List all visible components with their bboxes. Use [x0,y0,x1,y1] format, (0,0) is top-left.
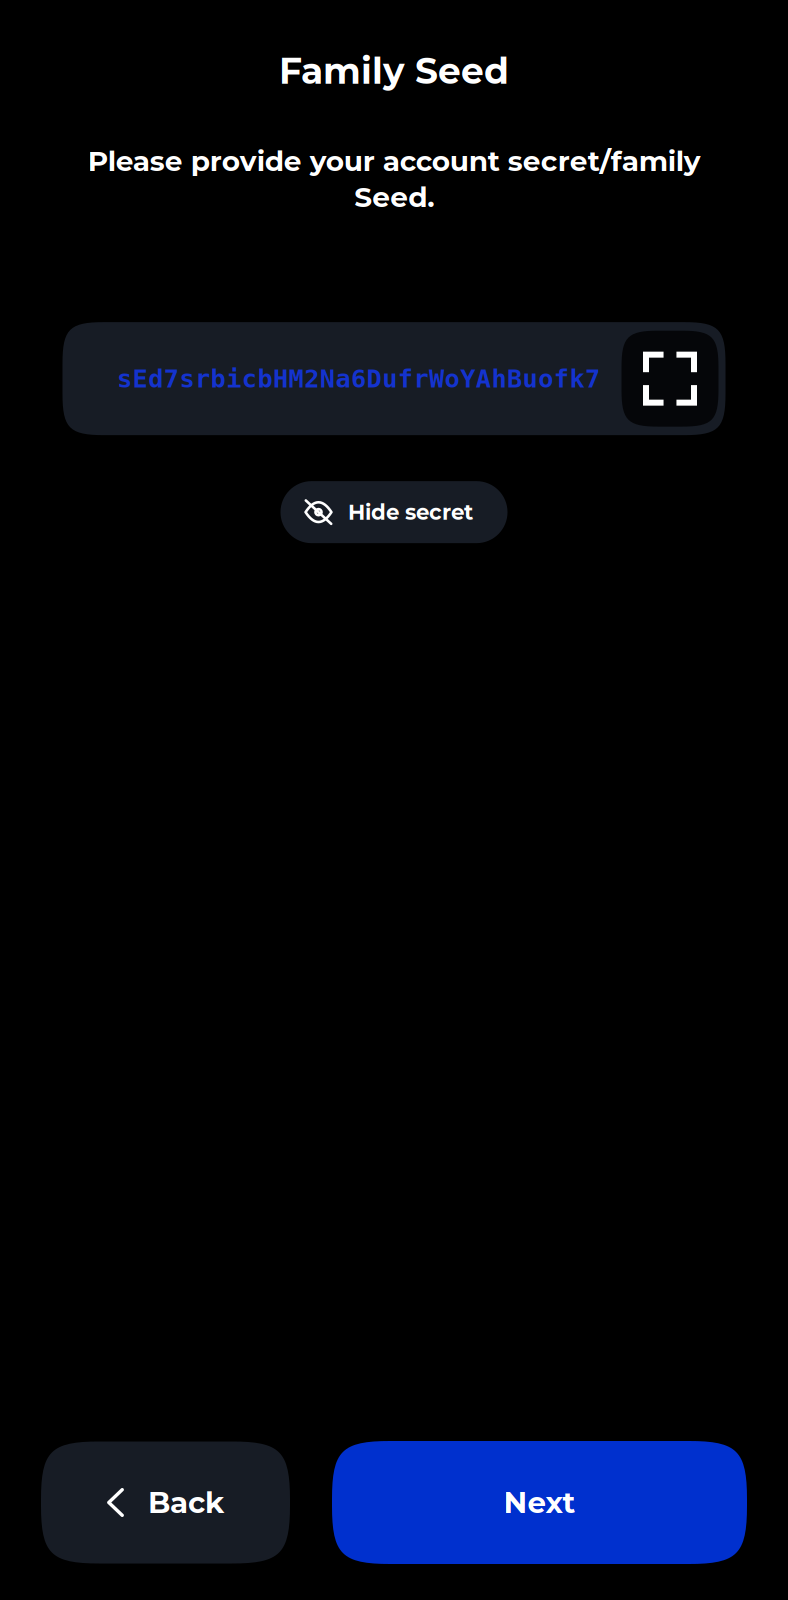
staticText: Next [503,1485,575,1520]
staticText: Hide secret [348,499,473,525]
button[interactable]: Hide secret [280,481,507,543]
staticText: sEd7srbicbHM2Na6DufrWoYAhBuofk7 [117,364,600,393]
button[interactable]: Back [41,1441,290,1563]
button[interactable]: sEd7srbicbHM2Na6DufrWoYAhBuofk7 [95,364,621,393]
staticText: Please provide your account secret/famil… [87,144,700,214]
staticText: Family Seed [279,49,509,93]
button[interactable]: Next [332,1441,747,1564]
button[interactable]: Scan QR code [621,331,718,427]
staticText: Back [148,1485,224,1520]
